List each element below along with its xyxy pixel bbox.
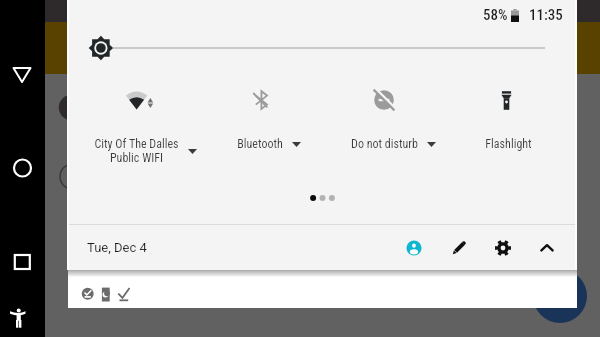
button[interactable]: Back	[0, 58, 45, 92]
button[interactable]: Tue, Dec 4	[87, 223, 596, 271]
button[interactable]: Collapse	[533, 234, 561, 262]
staticText: Bluetooth	[237, 137, 283, 151]
staticText: Tue, Dec 4	[87, 240, 147, 255]
button[interactable]: Edit	[445, 234, 473, 262]
button[interactable]: Do not disturb	[322, 87, 446, 151]
button[interactable]: Recent apps	[0, 245, 45, 279]
button[interactable]: Home	[0, 151, 45, 185]
button[interactable]: User profile	[400, 234, 428, 262]
staticText: City Of The Dalles Public WIFI	[94, 137, 179, 165]
button[interactable]: Flashlight	[446, 87, 570, 151]
button[interactable]: Bluetooth	[198, 87, 322, 151]
button[interactable]: Accessibility	[0, 302, 45, 336]
staticText: 58%	[483, 6, 508, 24]
staticText: 11:35	[529, 6, 563, 24]
button[interactable]: Settings	[489, 234, 517, 262]
staticText: Do not disturb	[351, 137, 418, 151]
staticText: Flashlight	[485, 137, 532, 151]
button[interactable]: City Of The Dalles Public WIFI	[75, 87, 198, 165]
